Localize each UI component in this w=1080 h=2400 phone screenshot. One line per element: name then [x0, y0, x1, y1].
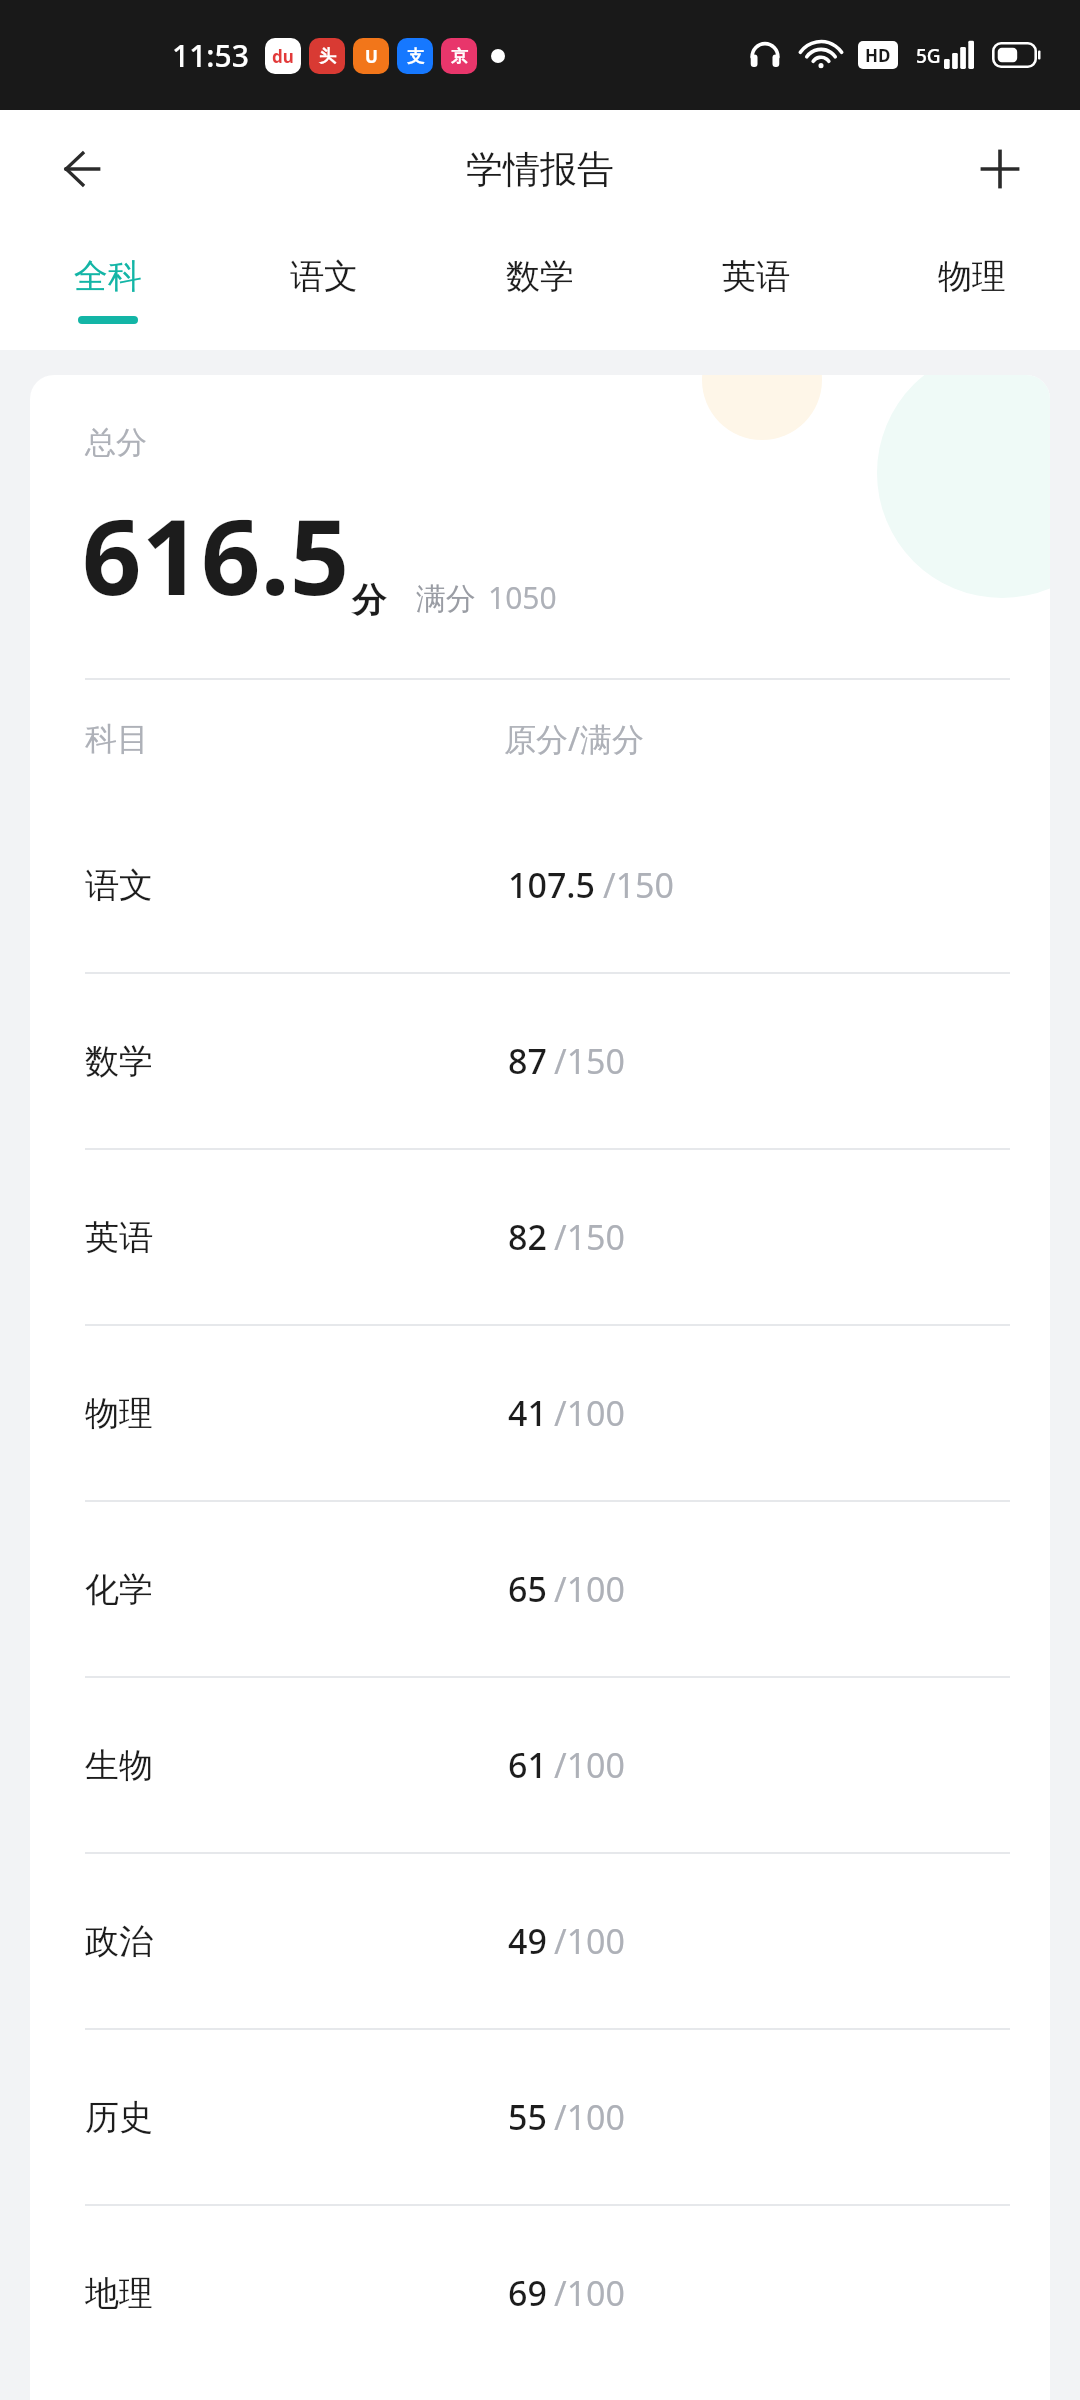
staticText: 物理 — [938, 255, 1006, 298]
button[interactable]: 生物 — [30, 1678, 1050, 1852]
staticText: /100 — [554, 2270, 625, 2316]
staticText: 数学 — [506, 255, 574, 298]
staticText: 全科 — [74, 255, 142, 298]
button[interactable]: 化学 — [30, 1502, 1050, 1676]
staticText: 61 — [508, 1742, 547, 1788]
button[interactable]: 物理 — [30, 1326, 1050, 1500]
staticText: 41 — [508, 1390, 547, 1436]
button[interactable]: Add — [958, 127, 1042, 211]
button[interactable]: 物理 — [864, 228, 1080, 350]
staticText: 11:53 — [172, 35, 249, 76]
staticText: 1050 — [488, 577, 557, 618]
staticText: 政治 — [85, 1920, 153, 1963]
staticText: 物理 — [85, 1392, 153, 1435]
button[interactable]: 英语 — [648, 228, 864, 350]
button[interactable]: 历史 — [30, 2030, 1050, 2204]
staticText: 历史 — [85, 2096, 153, 2139]
staticText: 学情报告 — [466, 146, 614, 193]
button[interactable]: Back — [40, 127, 124, 211]
staticText: 京 — [451, 46, 468, 67]
staticText: 65 — [508, 1566, 547, 1612]
button[interactable]: 英语 — [30, 1150, 1050, 1324]
staticText: 头 — [319, 46, 336, 67]
staticText: 生物 — [85, 1744, 153, 1787]
staticText: 化学 — [85, 1568, 153, 1611]
staticText: U — [365, 45, 378, 68]
staticText: 原分/满分 — [504, 717, 644, 761]
staticText: 科目 — [85, 719, 149, 759]
staticText: 49 — [508, 1918, 547, 1964]
button[interactable]: 全科 — [0, 228, 216, 350]
button[interactable]: 数学 — [432, 228, 648, 350]
button[interactable]: 数学 — [30, 974, 1050, 1148]
staticText: 82 — [508, 1214, 547, 1260]
staticText: 分 — [352, 579, 386, 622]
button[interactable]: 语文 — [216, 228, 432, 350]
staticText: /150 — [554, 1214, 625, 1260]
staticText: HD — [865, 44, 891, 67]
staticText: 87 — [508, 1038, 547, 1084]
staticText: 数学 — [85, 1040, 153, 1083]
staticText: 总分 — [85, 423, 147, 462]
staticText: 英语 — [85, 1216, 153, 1259]
staticText: /100 — [554, 1742, 625, 1788]
staticText: /150 — [554, 1038, 625, 1084]
staticText: /100 — [554, 1390, 625, 1436]
staticText: 55 — [508, 2094, 547, 2140]
staticText: 语文 — [290, 255, 358, 298]
staticText: 支 — [407, 46, 424, 67]
button[interactable]: 政治 — [30, 1854, 1050, 2028]
staticText: /150 — [603, 862, 674, 908]
staticText: 616.5 — [82, 484, 350, 626]
staticText: /100 — [554, 1566, 625, 1612]
staticText: 69 — [508, 2270, 547, 2316]
staticText: 语文 — [85, 864, 153, 907]
staticText: 5G — [916, 43, 941, 69]
staticText: 满分 — [416, 580, 476, 618]
staticText: 英语 — [722, 255, 790, 298]
staticText: 107.5 — [508, 862, 596, 908]
button[interactable]: 地理 — [30, 2206, 1050, 2380]
button[interactable]: 语文 — [30, 798, 1050, 972]
staticText: /100 — [554, 1918, 625, 1964]
staticText: 地理 — [85, 2272, 153, 2315]
staticText: du — [272, 45, 294, 68]
staticText: /100 — [554, 2094, 625, 2140]
